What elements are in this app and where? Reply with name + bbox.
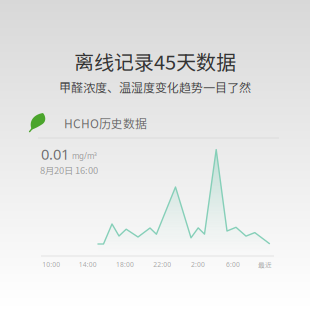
staticText: 甲醛浓度、温湿度变化趋势一目了然	[59, 78, 251, 96]
staticText: 14:00	[79, 260, 97, 269]
staticText: 22:00	[153, 260, 171, 269]
staticText: HCHO历史数据	[64, 114, 147, 132]
staticText: 最近	[258, 260, 272, 269]
staticText: 2:00	[191, 260, 205, 269]
staticText: 8月20日 16:00	[40, 163, 98, 177]
staticText: mg/m³	[72, 151, 97, 161]
staticText: 18:00	[116, 260, 134, 269]
staticText: 离线记录45天数据	[74, 46, 236, 75]
staticText: 0.01	[41, 144, 69, 164]
staticText: 10:00	[42, 260, 60, 269]
staticText: 6:00	[226, 260, 240, 269]
